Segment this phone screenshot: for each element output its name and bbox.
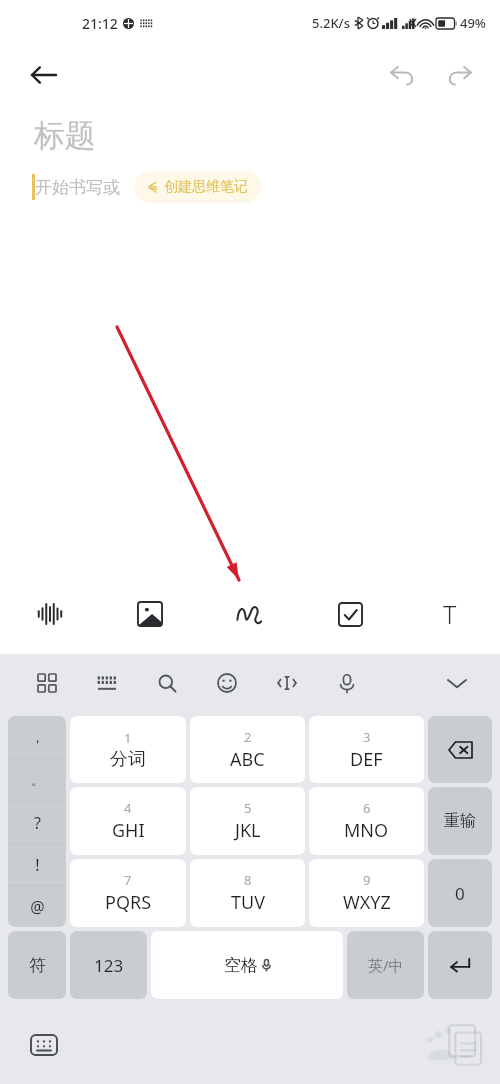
button[interactable]: ， [8,716,66,758]
button[interactable]: 3 [309,716,424,783]
button[interactable]: 符 [8,931,66,999]
staticText: DEF [350,747,383,772]
staticText: 21:12 [82,14,118,33]
staticText: 3 [363,728,371,746]
button[interactable]: Back [22,53,66,97]
button[interactable]: Cursor [266,662,308,704]
button[interactable]: 英/中 [347,931,424,999]
button[interactable]: Redo [438,53,482,97]
staticText: 5.2K/s [312,14,350,32]
button[interactable]: 空格 [151,931,343,999]
button[interactable]: Enter [428,931,492,999]
button[interactable]: 123 [70,931,147,999]
button[interactable]: Checklist [300,574,400,654]
button[interactable]: Search [146,662,188,704]
staticText: ABC [230,747,265,772]
button[interactable]: ? [8,802,66,843]
staticText: 2 [244,728,252,746]
staticText: ? [34,812,41,834]
staticText: GHI [112,818,145,843]
staticText: TUV [231,890,265,915]
staticText: 标题 [34,116,96,155]
button[interactable]: 0 [428,859,492,927]
button[interactable]: ! [8,844,66,885]
button[interactable]: Hide keyboard [436,662,478,704]
button[interactable]: 9 [309,859,424,927]
button[interactable]: 4 [70,787,186,855]
button[interactable]: Voice input [326,662,368,704]
button[interactable]: Audio [0,574,100,654]
button[interactable]: 创建思维笔记 [134,171,261,203]
staticText: JKL [235,818,261,843]
button[interactable]: Apps [26,662,68,704]
staticText: 创建思维笔记 [164,178,248,196]
button[interactable]: 6 [309,787,424,855]
button[interactable]: Handwriting [200,574,300,654]
button[interactable]: @ [8,886,66,927]
staticText: 8 [244,871,252,889]
staticText: 7 [124,871,132,889]
staticText: 1 [124,729,132,747]
button[interactable]: Emoji [206,662,248,704]
button[interactable]: 2 [190,716,305,783]
button[interactable]: 7 [70,859,186,927]
staticText: 6 [363,799,371,817]
staticText: 。 [31,772,44,788]
staticText: 开始书写或 [35,177,120,198]
staticText: 空格 [224,955,258,976]
staticText: 123 [94,954,124,977]
button[interactable]: Undo [380,53,424,97]
button[interactable]: 重输 [428,787,492,855]
staticText: @ [30,896,45,918]
staticText: PQRS [105,890,152,915]
button[interactable]: 。 [8,759,66,801]
button[interactable]: Image [100,574,200,654]
staticText: WXYZ [343,890,391,915]
staticText: 0 [455,882,465,905]
staticText: MNO [344,818,389,843]
staticText: T [443,597,457,631]
button[interactable]: Text format [400,574,500,654]
button[interactable]: 5 [190,787,305,855]
staticText: 重输 [444,811,476,831]
button[interactable]: Backspace [428,716,492,783]
staticText: 英/中 [368,955,404,975]
staticText: ! [35,854,40,876]
button[interactable]: Switch keyboard [22,1023,66,1067]
staticText: 5 [244,799,252,817]
staticText: 分词 [110,748,146,771]
staticText: ， [31,729,44,745]
staticText: 符 [29,955,46,976]
staticText: 49% [460,14,486,32]
staticText: 9 [363,871,371,889]
staticText: 4 [124,799,132,817]
button[interactable]: 8 [190,859,305,927]
button[interactable]: 1 [70,716,186,783]
button[interactable]: Keyboard layout [86,662,128,704]
